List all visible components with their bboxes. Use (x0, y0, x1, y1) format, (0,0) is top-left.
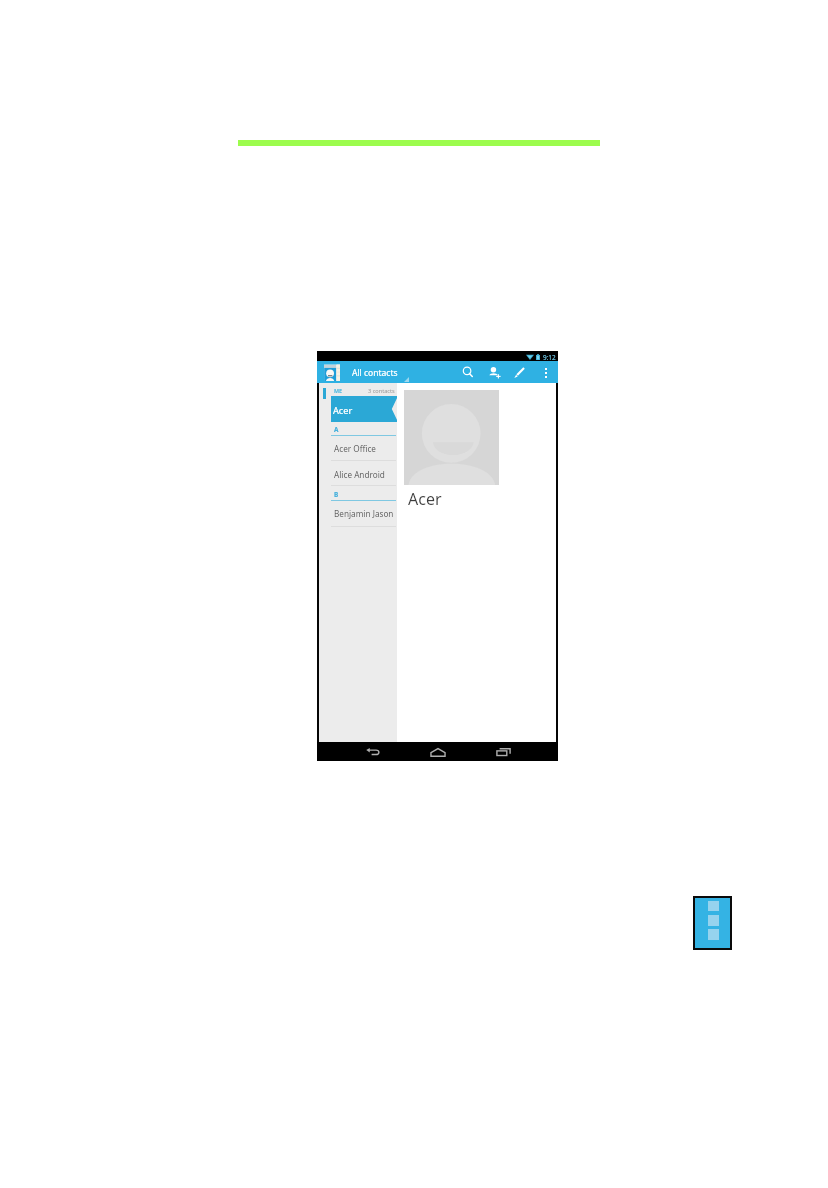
staticText: Acer (408, 488, 442, 510)
button[interactable]: Acer Office (319, 436, 397, 461)
staticText: Acer Office (334, 443, 376, 454)
button[interactable]: More options illustration (695, 898, 730, 948)
button[interactable]: Alice Android (319, 461, 397, 486)
button[interactable]: Edit (513, 366, 526, 379)
staticText: Acer (333, 404, 353, 417)
staticText: B (334, 490, 339, 499)
staticText: ME (334, 387, 343, 394)
staticText: 9:12 (543, 353, 556, 362)
staticText: Alice Android (334, 469, 385, 480)
staticText: Benjamin Jason (334, 508, 394, 519)
button[interactable]: Search (462, 366, 475, 379)
button[interactable]: More options (539, 366, 552, 379)
staticText: All contacts (352, 367, 398, 379)
button[interactable]: Benjamin Jason (319, 501, 397, 527)
staticText: A (334, 425, 339, 434)
staticText: 3 contacts (368, 387, 395, 395)
button[interactable]: Contacts (324, 364, 340, 381)
button[interactable]: Add contact (488, 366, 501, 379)
button[interactable]: Back (366, 748, 380, 756)
button[interactable]: Acer (331, 396, 398, 422)
button[interactable]: Home (430, 748, 446, 757)
button[interactable]: Recents (496, 748, 511, 756)
button[interactable]: All contacts (352, 367, 398, 379)
